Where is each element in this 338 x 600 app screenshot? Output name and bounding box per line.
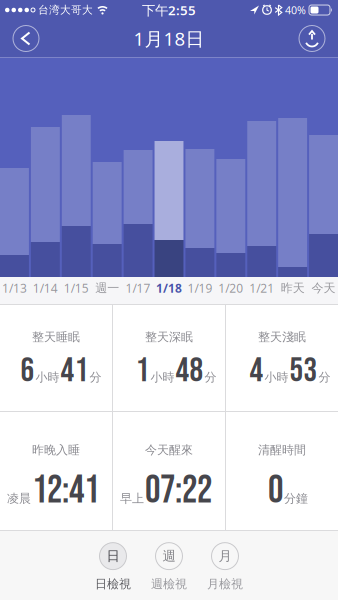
staticText: 1/15 <box>64 280 89 296</box>
staticText: 07:22 <box>145 468 212 514</box>
button[interactable]: Share <box>299 25 338 51</box>
button[interactable]: 週一 <box>93 281 122 295</box>
button[interactable]: 1/17 <box>124 280 152 296</box>
button[interactable]: 1/19 <box>185 280 214 296</box>
button[interactable]: 月 <box>197 543 253 588</box>
staticText: 月檢視 <box>207 577 243 591</box>
staticText: 週檢視 <box>151 577 187 591</box>
staticText: 12:41 <box>32 468 99 514</box>
staticText: 1月18日 <box>133 26 204 51</box>
staticText: 分 <box>318 370 330 384</box>
staticText: 小時 <box>35 370 59 384</box>
button[interactable]: 昨天 <box>278 281 307 295</box>
staticText: 6 <box>20 351 34 391</box>
staticText: 1/19 <box>187 280 212 296</box>
staticText: 48 <box>175 351 203 391</box>
staticText: 週 <box>162 548 175 564</box>
staticText: 分 <box>89 370 101 384</box>
staticText: 分鐘 <box>284 491 308 506</box>
staticText: 清醒時間 <box>258 443 306 457</box>
button[interactable]: 1/13 <box>0 280 29 296</box>
staticText: 40% <box>285 3 306 17</box>
staticText: 今天 <box>311 281 335 295</box>
staticText: 4 <box>249 351 263 391</box>
staticText: 今天醒來 <box>145 443 193 457</box>
staticText: 1 <box>135 351 149 391</box>
button[interactable]: 1/15 <box>62 280 91 296</box>
button[interactable]: 週 <box>141 543 197 588</box>
button[interactable]: 1/18 <box>154 280 183 296</box>
staticText: 週一 <box>95 281 119 295</box>
staticText: 月 <box>218 548 231 564</box>
staticText: 1/14 <box>33 280 58 296</box>
staticText: 1/20 <box>218 280 243 296</box>
button[interactable]: 1/20 <box>216 280 245 296</box>
button[interactable]: Back <box>0 25 39 51</box>
staticText: 0 <box>268 468 283 514</box>
staticText: 整天深眠 <box>145 330 193 344</box>
staticText: 1/17 <box>126 280 151 296</box>
staticText: 下午2:55 <box>142 1 196 19</box>
staticText: 台湾大哥大 <box>38 3 93 16</box>
button[interactable]: 1/14 <box>31 280 60 296</box>
staticText: 1/21 <box>249 280 274 296</box>
button[interactable]: 今天 <box>309 281 338 295</box>
staticText: 1/13 <box>2 280 27 296</box>
staticText: 日檢視 <box>95 577 131 591</box>
staticText: 41 <box>60 351 88 391</box>
staticText: 昨晚入睡 <box>32 443 80 457</box>
button[interactable]: 1/21 <box>247 280 276 296</box>
staticText: 整天睡眠 <box>32 330 80 344</box>
staticText: 早上 <box>120 491 144 506</box>
staticText: 整天淺眠 <box>258 330 306 344</box>
button[interactable]: 日 <box>85 543 141 588</box>
staticText: 凌晨 <box>7 491 31 506</box>
staticText: 1/18 <box>156 280 182 296</box>
staticText: 分 <box>204 370 216 384</box>
staticText: 日 <box>106 548 119 564</box>
staticText: 53 <box>289 351 317 391</box>
staticText: 昨天 <box>281 281 305 295</box>
staticText: 小時 <box>150 370 174 384</box>
staticText: 小時 <box>264 370 288 384</box>
